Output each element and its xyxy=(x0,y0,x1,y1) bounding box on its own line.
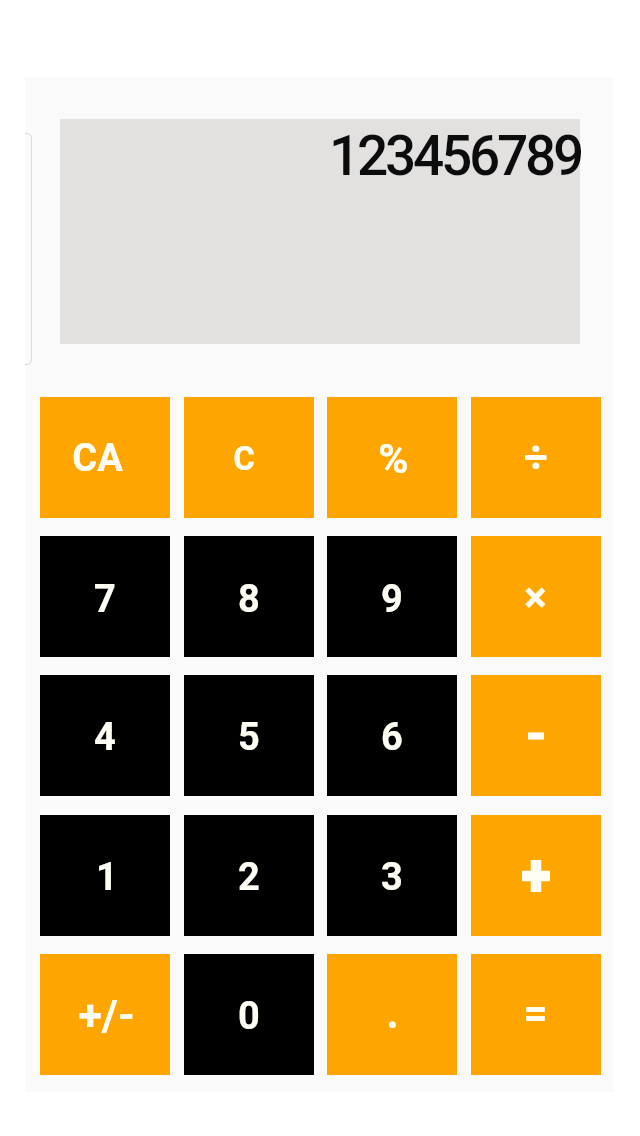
button[interactable]: = xyxy=(471,954,601,1075)
button[interactable]: 2 xyxy=(184,815,314,936)
button[interactable]: 3 xyxy=(327,815,457,936)
staticText: ÷ xyxy=(524,433,548,482)
button[interactable]: C xyxy=(184,397,314,518)
staticText: 2 xyxy=(238,855,260,900)
staticText: % xyxy=(378,435,409,483)
button[interactable]: 4 xyxy=(40,675,170,796)
staticText: . xyxy=(386,989,399,1038)
staticText: 7 xyxy=(94,577,116,622)
staticText: 1 xyxy=(96,855,118,900)
button[interactable]: × xyxy=(471,536,601,657)
staticText: C xyxy=(233,439,255,478)
staticText: = xyxy=(523,989,548,1038)
button[interactable]: 0 xyxy=(184,954,314,1075)
button[interactable]: 5 xyxy=(184,675,314,796)
staticText: 4 xyxy=(94,715,116,760)
button[interactable]: 7 xyxy=(40,536,170,657)
staticText: × xyxy=(524,573,547,622)
button[interactable]: 6 xyxy=(327,675,457,796)
staticText: 0 xyxy=(238,994,260,1039)
button[interactable]: 9 xyxy=(327,536,457,657)
button[interactable]: ÷ xyxy=(471,397,601,518)
button[interactable]: . xyxy=(327,954,457,1075)
button[interactable]: Plus xyxy=(471,815,601,936)
staticText: 6 xyxy=(381,715,403,760)
button[interactable]: CA xyxy=(40,397,170,518)
button[interactable]: +/- xyxy=(40,954,170,1075)
button[interactable]: % xyxy=(327,397,457,518)
button[interactable]: 123456789 xyxy=(60,119,580,344)
staticText: 5 xyxy=(238,715,260,760)
staticText: 8 xyxy=(238,577,260,622)
button[interactable]: Minus xyxy=(471,675,601,796)
button[interactable]: 8 xyxy=(184,536,314,657)
staticText: +/- xyxy=(78,990,135,1040)
staticText: 123456789 xyxy=(328,124,581,188)
staticText: 3 xyxy=(381,855,403,900)
button[interactable]: 1 xyxy=(40,815,170,936)
staticText: CA xyxy=(72,436,123,481)
staticText: 9 xyxy=(381,577,403,622)
